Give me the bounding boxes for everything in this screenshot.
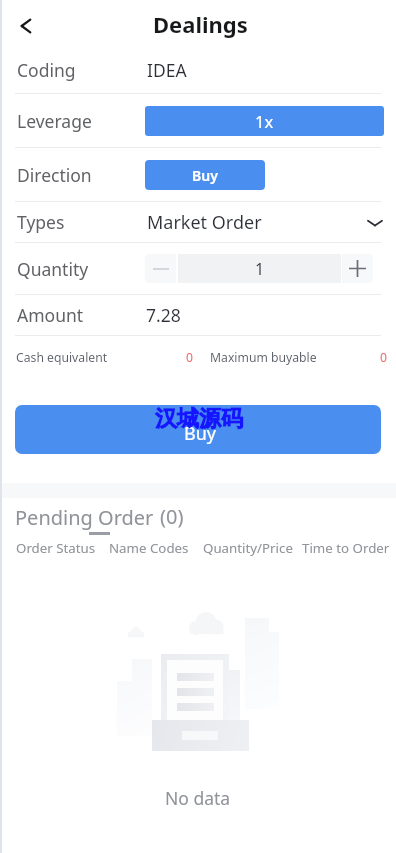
staticText: 汉城源码 [155, 405, 243, 433]
staticText: 0 [380, 349, 387, 365]
staticText: Maximum buyable [210, 349, 317, 365]
button[interactable]: Buy [145, 160, 265, 190]
staticText: 1 [255, 258, 265, 280]
staticText: Leverage [17, 109, 92, 133]
staticText: (0) [160, 503, 184, 530]
staticText: 0 [186, 349, 193, 365]
button[interactable]: Buy [15, 405, 381, 454]
staticText: Time to Order [302, 539, 390, 557]
staticText: Coding [17, 58, 76, 82]
staticText: Buy [184, 421, 217, 446]
staticText: Cash equivalent [16, 349, 108, 365]
staticText: IDEA [147, 58, 187, 82]
button[interactable]: 1x [145, 106, 384, 136]
staticText: Dealings [153, 9, 248, 39]
staticText: Pending Order [15, 504, 154, 531]
staticText: 7.28 [146, 303, 181, 327]
staticText: Order Status [16, 539, 96, 557]
button[interactable]: Increase quantity [342, 254, 373, 283]
other: Expand order type [367, 215, 383, 231]
staticText: Quantity [17, 257, 89, 281]
staticText: Direction [17, 163, 92, 187]
staticText: Types [17, 210, 65, 234]
button[interactable]: 1 [178, 254, 341, 283]
staticText: Buy [192, 166, 218, 185]
staticText: Amount [17, 303, 84, 327]
staticText: 1x [255, 110, 274, 132]
button[interactable]: Decrease quantity [145, 254, 176, 283]
button[interactable]: Market Order [145, 210, 384, 235]
staticText: Name Codes [109, 539, 189, 557]
staticText: Market Order [147, 210, 262, 235]
button[interactable]: Back [0, 0, 52, 46]
staticText: No data [165, 786, 231, 810]
staticText: Quantity/Price [203, 539, 293, 557]
